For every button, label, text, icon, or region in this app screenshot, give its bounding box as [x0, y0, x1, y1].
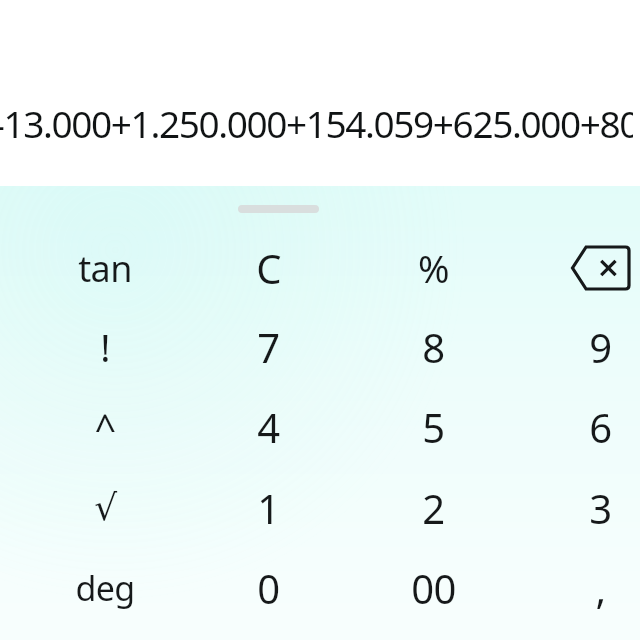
staticText: 9 [589, 320, 612, 374]
button[interactable]: 5 [353, 387, 513, 467]
staticText: 7 [257, 320, 280, 374]
staticText: √ [94, 487, 117, 529]
staticText: deg [75, 565, 135, 611]
button[interactable]: √ [25, 468, 185, 548]
button[interactable]: 0 [188, 548, 348, 628]
staticText: 5 [422, 400, 445, 454]
staticText: 8 [422, 320, 445, 374]
button[interactable]: Backspace [520, 228, 640, 308]
button[interactable]: ! [25, 307, 185, 387]
button[interactable]: 3 [520, 468, 640, 548]
button[interactable]: 1 [188, 468, 348, 548]
button[interactable]: 4 [188, 387, 348, 467]
staticText: 0 [257, 561, 280, 615]
button[interactable]: 8 [353, 307, 513, 387]
staticText: % [418, 242, 449, 294]
button[interactable]: 6 [520, 387, 640, 467]
button[interactable]: 00 [353, 548, 513, 628]
staticText: tan [78, 244, 132, 293]
button[interactable]: 9 [520, 307, 640, 387]
staticText: 00 [411, 561, 456, 615]
button[interactable]: tan [25, 228, 185, 308]
button[interactable]: -13.000+1.250.000+154.059+625.000+80.500… [0, 0, 640, 640]
staticText: , [595, 561, 606, 615]
button[interactable]: C [188, 228, 348, 308]
button[interactable]: Drag handle [238, 205, 319, 213]
button[interactable]: , [520, 548, 640, 628]
button[interactable]: % [353, 228, 513, 308]
staticText: 4 [257, 400, 280, 454]
button[interactable]: 7 [188, 307, 348, 387]
staticText: 2 [422, 481, 445, 535]
button[interactable]: 2 [353, 468, 513, 548]
staticText: -13.000+1.250.000+154.059+625.000+80.500… [0, 98, 633, 148]
staticText: ^ [94, 401, 116, 453]
button[interactable]: deg [25, 548, 185, 628]
button[interactable]: ^ [25, 387, 185, 467]
staticText: 6 [589, 400, 612, 454]
staticText: 3 [589, 481, 612, 535]
staticText: C [256, 241, 281, 295]
staticText: ! [100, 321, 110, 373]
staticText: 1 [257, 481, 280, 535]
